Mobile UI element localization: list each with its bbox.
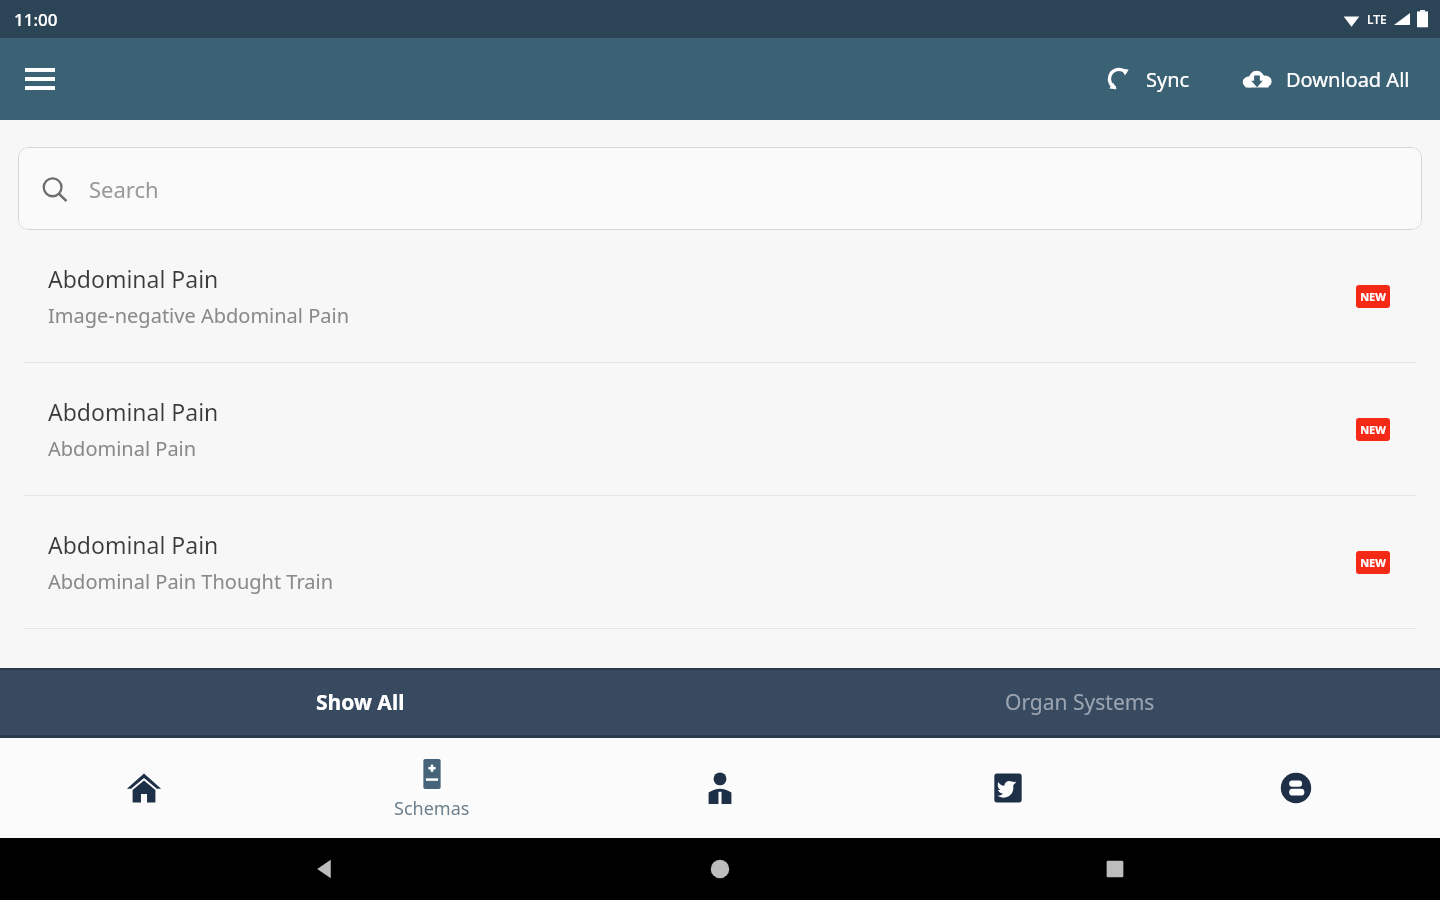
button[interactable]: Doctors — [576, 738, 864, 838]
staticText: Show All — [316, 688, 405, 717]
button[interactable]: Abdominal Pain — [0, 363, 1440, 495]
button[interactable]: Twitter — [864, 738, 1152, 838]
staticText: Download All — [1286, 66, 1410, 93]
button[interactable]: Home — [650, 838, 790, 900]
button[interactable]: Download All — [1232, 52, 1418, 106]
button[interactable]: Recent apps — [1045, 838, 1185, 900]
staticText: NEW — [1360, 289, 1386, 304]
button[interactable]: Search — [18, 147, 1422, 230]
button[interactable]: Schemas — [288, 738, 576, 838]
staticText: Abdominal Pain — [48, 396, 219, 427]
staticText: Sync — [1146, 66, 1190, 93]
staticText: Abdominal Pain — [48, 435, 197, 462]
button[interactable]: Abdominal Pain — [0, 230, 1440, 362]
button[interactable]: Blog — [1152, 738, 1440, 838]
button[interactable]: Open navigation menu — [14, 53, 66, 105]
staticText: NEW — [1360, 555, 1386, 570]
staticText: Abdominal Pain — [48, 529, 219, 560]
button[interactable]: Show All — [0, 670, 720, 735]
staticText: Abdominal Pain — [48, 263, 219, 294]
staticText: NEW — [1360, 422, 1386, 437]
staticText: 11:00 — [14, 8, 58, 31]
button[interactable]: Sync — [1096, 54, 1198, 104]
staticText: Organ Systems — [1005, 688, 1155, 717]
staticText: Search — [89, 174, 159, 204]
staticText: Abdominal Pain Thought Train — [48, 568, 334, 595]
staticText: Schemas — [394, 796, 470, 821]
button[interactable]: Back — [255, 838, 395, 900]
button[interactable]: Abdominal Pain — [0, 496, 1440, 628]
staticText: Image-negative Abdominal Pain — [48, 302, 350, 329]
staticText: LTE — [1367, 11, 1387, 27]
button[interactable]: Home — [0, 738, 288, 838]
button[interactable]: Organ Systems — [720, 670, 1440, 735]
